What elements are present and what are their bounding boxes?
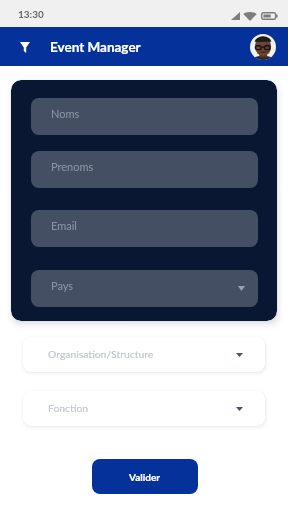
staticText: Email [51, 219, 77, 232]
button[interactable]: Noms [31, 98, 258, 135]
staticText: Pays [51, 279, 74, 292]
button[interactable]: Pays [31, 270, 258, 307]
button[interactable]: Valider [92, 459, 198, 494]
button[interactable]: Organisation/Structure [23, 337, 265, 372]
staticText: Valider [129, 471, 161, 483]
button[interactable]: Filter [14, 36, 36, 58]
staticText: Event Manager [50, 39, 141, 55]
button[interactable]: Prenoms [31, 151, 258, 188]
button[interactable]: Profile [250, 34, 276, 60]
staticText: Noms [51, 107, 80, 120]
button[interactable]: Email [31, 210, 258, 247]
staticText: Prenoms [51, 160, 94, 173]
staticText: 13:30 [18, 8, 44, 20]
staticText: Fonction [48, 402, 89, 414]
staticText: Organisation/Structure [48, 348, 154, 360]
button[interactable]: Fonction [23, 391, 265, 426]
